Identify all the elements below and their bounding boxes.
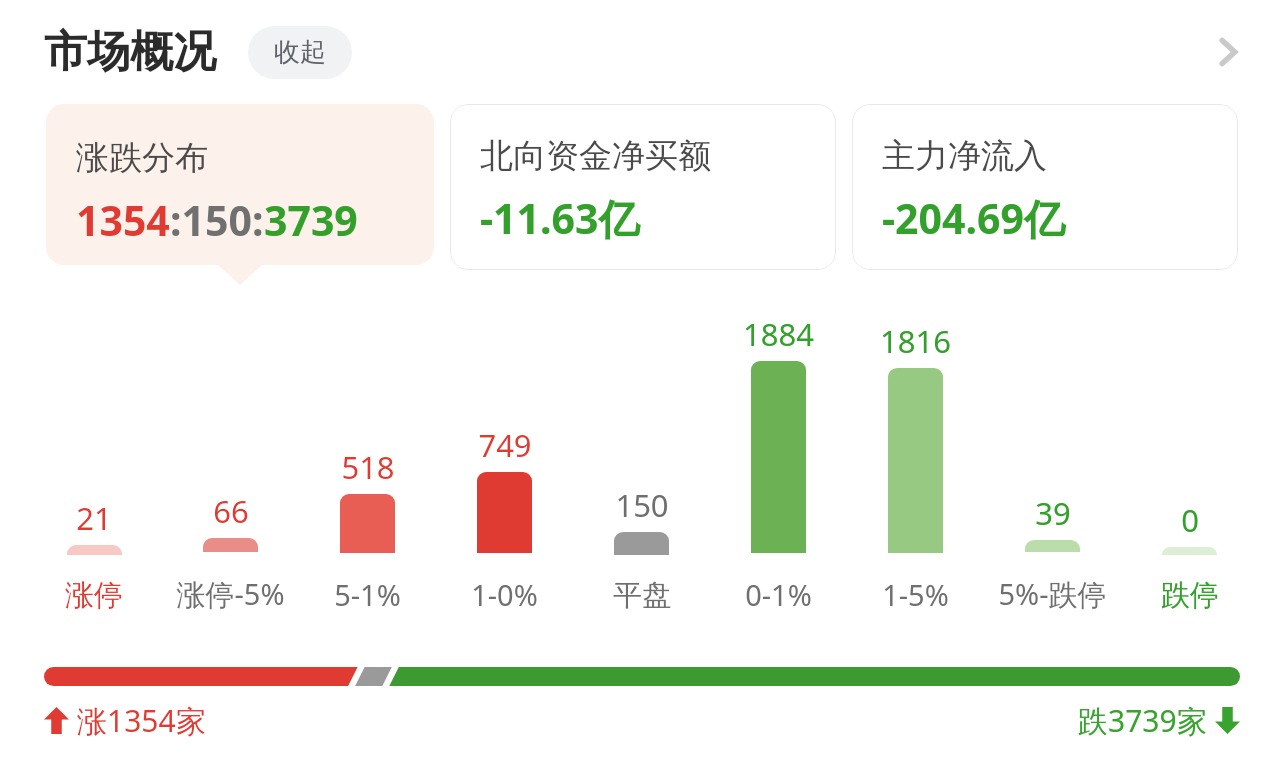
button[interactable]: 涨跌分布 xyxy=(46,104,434,265)
button[interactable]: 749 xyxy=(436,290,573,626)
staticText: 0 xyxy=(1181,499,1199,541)
staticText: 0-1% xyxy=(745,575,812,614)
staticText: 涨停-5% xyxy=(176,574,285,614)
staticText: 39 xyxy=(1035,492,1071,534)
staticText: 1884 xyxy=(743,313,814,355)
button[interactable]: 1884 xyxy=(710,290,847,626)
button[interactable]: 150 xyxy=(573,290,710,626)
staticText: 749 xyxy=(478,424,532,466)
button[interactable]: 39 xyxy=(984,290,1121,626)
staticText: 平盘 xyxy=(613,577,671,614)
button[interactable]: 北向资金净买额 xyxy=(450,104,836,270)
staticText: 5%-跌停 xyxy=(998,574,1107,614)
staticText: 涨1354家 xyxy=(77,700,206,741)
staticText: 涨停 xyxy=(65,577,123,614)
button[interactable]: 518 xyxy=(299,290,436,626)
staticText: 涨跌分布 xyxy=(76,137,208,179)
staticText: 5-1% xyxy=(334,575,401,614)
button[interactable]: 1816 xyxy=(847,290,984,626)
button[interactable]: 涨1354家 xyxy=(44,700,206,741)
staticText: 1816 xyxy=(880,320,951,362)
button[interactable]: 收起 xyxy=(248,26,352,79)
staticText: 518 xyxy=(341,446,395,488)
staticText: 150 xyxy=(615,484,669,526)
staticText: 1354 xyxy=(76,192,170,248)
staticText: 主力净流入 xyxy=(882,135,1047,177)
staticText: 1-5% xyxy=(882,575,949,614)
staticText: 市场概况 xyxy=(44,25,216,79)
button[interactable]: 21 xyxy=(26,290,162,626)
button[interactable]: 查看更多 xyxy=(1200,24,1256,80)
button[interactable]: 0 xyxy=(1121,290,1258,626)
staticText: 1-0% xyxy=(471,575,538,614)
button[interactable]: 主力净流入 xyxy=(852,104,1238,270)
button[interactable]: 跌3739家 xyxy=(1078,700,1240,741)
staticText: 21 xyxy=(76,497,112,539)
staticText: 跌停 xyxy=(1161,577,1219,614)
staticText: :150: xyxy=(170,192,264,248)
staticText: 3739 xyxy=(264,192,358,248)
staticText: 66 xyxy=(213,490,249,532)
staticText: 跌3739家 xyxy=(1078,700,1207,741)
staticText: 北向资金净买额 xyxy=(480,135,711,177)
button[interactable]: 66 xyxy=(162,290,299,626)
staticText: 收起 xyxy=(274,36,326,69)
staticText: -11.63亿 xyxy=(480,190,640,246)
staticText: -204.69亿 xyxy=(882,190,1065,246)
